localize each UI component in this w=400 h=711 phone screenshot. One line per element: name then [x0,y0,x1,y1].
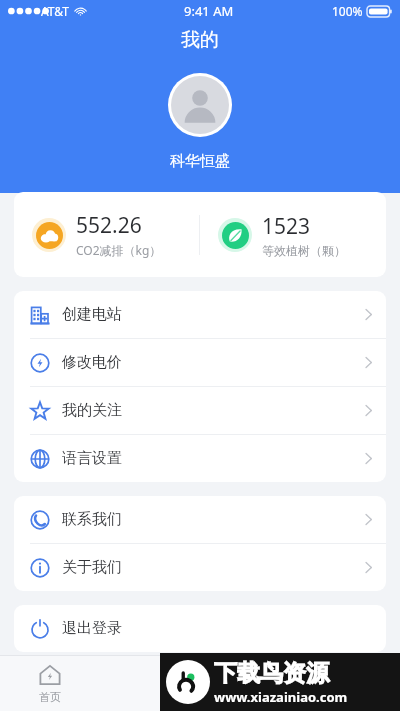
staticText: 修改电价 [62,353,122,372]
staticText: 552.26 [76,211,142,240]
staticText: 我的关注 [62,401,122,420]
button[interactable]: 退出登录 [14,605,386,652]
staticText: 创建电站 [62,305,122,324]
button[interactable]: 我的关注 [14,387,386,434]
staticText: 下载鸟资源 [214,659,329,688]
staticText: 首页 [39,690,61,704]
staticText: 我的 [0,28,400,52]
staticText: 等效植树（颗） [262,243,346,258]
staticText: 9:41 AM [184,2,234,20]
staticText: 关于我们 [62,558,122,577]
button[interactable]: 1523 [200,212,386,258]
staticText: AT&T [41,3,69,19]
staticText: 100% [332,3,363,19]
staticText: 语言设置 [62,449,122,468]
staticText: 科华恒盛 [170,152,230,171]
staticText: www.xiazainiao.com [214,688,348,706]
staticText: 1523 [262,212,311,241]
button[interactable]: 联系我们 [14,496,386,543]
staticText: 退出登录 [62,619,122,638]
button[interactable]: 552.26 [14,211,199,258]
button[interactable]: 首页 [0,656,100,711]
button[interactable]: 语言设置 [14,435,386,482]
button[interactable]: 关于我们 [14,544,386,591]
button[interactable]: 创建电站 [14,291,386,338]
button[interactable]: 修改电价 [14,339,386,386]
staticText: CO2减排（kg） [76,242,162,258]
other: Profile avatar [171,76,229,134]
staticText: 联系我们 [62,510,122,529]
